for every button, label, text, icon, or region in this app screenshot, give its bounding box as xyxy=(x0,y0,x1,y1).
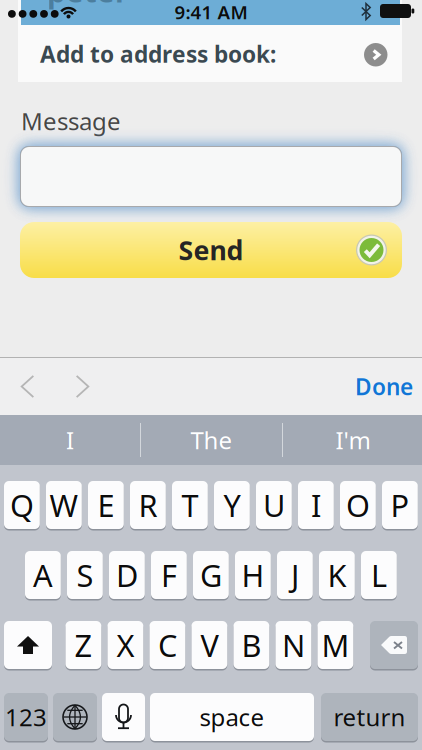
button[interactable]: A xyxy=(25,551,61,600)
button[interactable]: T xyxy=(172,481,208,530)
staticText: B xyxy=(241,625,261,665)
staticText: P xyxy=(390,485,409,525)
staticText: S xyxy=(76,555,93,595)
button[interactable]: P xyxy=(382,481,418,530)
staticText: T xyxy=(181,485,198,525)
button[interactable]: return xyxy=(321,693,418,742)
staticText: Message xyxy=(21,105,121,137)
staticText: L xyxy=(371,555,387,595)
button[interactable]: Add to address book: xyxy=(18,26,402,82)
button[interactable]: X xyxy=(107,621,143,670)
button[interactable]: J xyxy=(277,551,313,600)
button[interactable]: L xyxy=(361,551,397,600)
button[interactable]: O xyxy=(340,481,376,530)
button[interactable]: Z xyxy=(65,621,101,670)
staticText: M xyxy=(321,625,349,665)
staticText: I xyxy=(66,424,74,456)
button[interactable]: I xyxy=(298,481,334,530)
staticText: K xyxy=(327,555,346,595)
button[interactable]: E xyxy=(88,481,124,530)
button[interactable]: Done xyxy=(346,358,422,415)
staticText: space xyxy=(199,701,264,733)
staticText: I'm xyxy=(335,424,370,456)
button[interactable]: K xyxy=(319,551,355,600)
staticText: The xyxy=(190,424,232,456)
staticText: Z xyxy=(74,625,92,665)
staticText: peter xyxy=(47,0,128,10)
staticText: U xyxy=(263,485,285,525)
staticText: return xyxy=(333,701,405,733)
button[interactable]: Previous field xyxy=(0,358,55,415)
button[interactable]: Next keyboard xyxy=(53,693,97,742)
button[interactable]: N xyxy=(275,621,311,670)
button[interactable]: I'm xyxy=(283,415,422,465)
staticText: D xyxy=(116,555,138,595)
button[interactable]: space xyxy=(150,693,314,742)
staticText: X xyxy=(116,625,134,665)
staticText: J xyxy=(291,555,299,595)
button[interactable]: H xyxy=(235,551,271,600)
button[interactable]: U xyxy=(256,481,292,530)
staticText: 123 xyxy=(5,701,47,733)
button[interactable]: Y xyxy=(214,481,250,530)
staticText: Done xyxy=(355,371,413,401)
button[interactable]: Delete xyxy=(370,621,418,670)
staticText: O xyxy=(346,485,370,525)
staticText: I xyxy=(311,485,321,525)
button[interactable]: D xyxy=(109,551,145,600)
staticText: E xyxy=(97,485,114,525)
staticText: C xyxy=(158,625,177,665)
staticText: G xyxy=(200,555,222,595)
staticText: Y xyxy=(223,485,240,525)
button[interactable]: M xyxy=(317,621,353,670)
button[interactable]: R xyxy=(130,481,166,530)
button[interactable]: S xyxy=(67,551,103,600)
button[interactable]: V xyxy=(191,621,227,670)
button[interactable]: F xyxy=(151,551,187,600)
staticText: H xyxy=(241,555,264,595)
staticText: A xyxy=(33,555,53,595)
button[interactable]: Q xyxy=(4,481,40,530)
staticText: F xyxy=(161,555,177,595)
button[interactable]: 123 xyxy=(4,693,48,742)
staticText: R xyxy=(138,485,157,525)
button[interactable]: W xyxy=(46,481,82,530)
button[interactable]: B xyxy=(233,621,269,670)
button[interactable]: Send xyxy=(20,222,402,278)
button[interactable]: The xyxy=(141,415,282,465)
button[interactable]: I xyxy=(0,415,140,465)
button[interactable]: C xyxy=(149,621,185,670)
staticText: W xyxy=(49,485,78,525)
button[interactable]: Shift xyxy=(4,621,52,670)
staticText: Q xyxy=(10,485,34,525)
button[interactable]: G xyxy=(193,551,229,600)
staticText: N xyxy=(282,625,305,665)
staticText: 9:41 AM xyxy=(174,0,247,24)
button[interactable]: Next field xyxy=(55,358,110,415)
button[interactable]: Dictate xyxy=(102,693,145,742)
staticText: Send xyxy=(178,232,243,268)
staticText: Add to address book: xyxy=(40,39,276,69)
staticText: V xyxy=(200,625,218,665)
